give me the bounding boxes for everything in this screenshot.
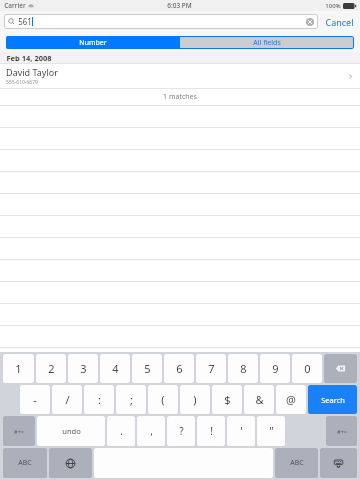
button[interactable]: 2: [36, 354, 66, 383]
button[interactable]: ,: [137, 416, 165, 446]
staticText: Number: [79, 38, 107, 48]
staticText: 5: [144, 361, 151, 376]
staticText: All fields: [253, 38, 281, 48]
staticText: David Taylor: [6, 66, 58, 78]
staticText: 3: [80, 361, 87, 376]
button[interactable]: Hide keyboard: [320, 448, 357, 478]
staticText: ABC: [290, 458, 304, 468]
button[interactable]: ": [257, 416, 285, 446]
staticText: ,: [150, 424, 153, 438]
staticText: :: [98, 392, 101, 407]
staticText: Cancel: [325, 16, 354, 28]
button[interactable]: #+=: [3, 416, 35, 446]
button[interactable]: /: [52, 385, 82, 414]
button[interactable]: -: [20, 385, 50, 414]
staticText: 100%: [325, 2, 341, 10]
button[interactable]: ): [180, 385, 210, 414]
staticText: ?: [179, 424, 184, 438]
staticText: $: [224, 392, 231, 407]
staticText: 555-610-6679: [6, 79, 38, 86]
staticText: undo: [62, 426, 81, 436]
button[interactable]: 3: [68, 354, 98, 383]
button[interactable]: 8: [228, 354, 258, 383]
staticText: (: [161, 392, 165, 407]
button[interactable]: 5: [132, 354, 162, 383]
button[interactable]: #+=: [326, 416, 357, 446]
staticText: -: [33, 392, 37, 407]
button[interactable]: 6: [164, 354, 194, 383]
button[interactable]: ?: [167, 416, 195, 446]
button[interactable]: ;: [116, 385, 146, 414]
staticText: 561: [18, 16, 32, 27]
staticText: .: [120, 424, 123, 438]
button[interactable]: Backspace: [324, 354, 357, 383]
staticText: 6: [176, 361, 183, 376]
staticText: Feb 14, 2008: [6, 53, 52, 63]
staticText: !: [210, 424, 213, 438]
staticText: Search: [321, 395, 345, 405]
staticText: ): [193, 392, 197, 407]
button[interactable]: $: [212, 385, 242, 414]
button[interactable]: @: [276, 385, 306, 414]
staticText: ;: [130, 392, 133, 407]
staticText: ABC: [18, 458, 32, 468]
staticText: 6:03 PM: [167, 1, 192, 10]
staticText: 1: [15, 361, 22, 376]
button[interactable]: .: [107, 416, 135, 446]
staticText: Carrier: [4, 1, 26, 10]
button[interactable]: 1: [3, 354, 34, 383]
button[interactable]: 9: [260, 354, 290, 383]
button[interactable]: :: [84, 385, 114, 414]
staticText: ": [269, 424, 274, 438]
staticText: 2: [48, 361, 55, 376]
staticText: 0: [304, 361, 311, 376]
button[interactable]: ABC: [3, 448, 47, 478]
button[interactable]: Number: [6, 36, 180, 49]
staticText: 7: [208, 361, 215, 376]
staticText: /: [65, 392, 70, 407]
staticText: ': [240, 424, 243, 438]
staticText: 8: [240, 361, 247, 376]
button[interactable]: ': [227, 416, 255, 446]
staticText: 4: [112, 361, 119, 376]
staticText: &: [255, 392, 264, 407]
button[interactable]: !: [197, 416, 225, 446]
button[interactable]: 0: [292, 354, 322, 383]
button[interactable]: All fields: [180, 36, 354, 49]
button[interactable]: (: [148, 385, 178, 414]
button[interactable]: Cancel: [323, 16, 356, 28]
staticText: #+=: [337, 428, 347, 435]
button[interactable]: Search: [308, 385, 357, 414]
button[interactable]: ABC: [275, 448, 318, 478]
button[interactable]: Clear search: [306, 18, 314, 26]
button[interactable]: David Taylor: [0, 64, 360, 88]
staticText: 1 matches: [163, 92, 197, 102]
button[interactable]: undo: [37, 416, 105, 446]
button[interactable]: 7: [196, 354, 226, 383]
staticText: @: [286, 392, 296, 407]
button[interactable]: Switch keyboard: [49, 448, 92, 478]
staticText: #+=: [14, 428, 24, 435]
button[interactable]: 561: [4, 14, 318, 29]
button[interactable]: &: [244, 385, 274, 414]
staticText: 9: [272, 361, 279, 376]
button[interactable]: 4: [100, 354, 130, 383]
